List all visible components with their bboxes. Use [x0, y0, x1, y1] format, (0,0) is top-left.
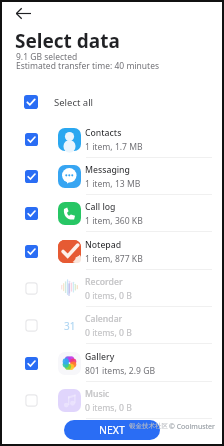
button[interactable]: Music: [0, 382, 224, 419]
staticText: Call log: [85, 201, 116, 213]
staticText: 31: [64, 319, 76, 333]
staticText: 0 items, 0 B: [85, 327, 132, 339]
staticText: 0 items, 0 B: [85, 402, 132, 414]
staticText: Notepad: [85, 239, 122, 251]
staticText: NEXT: [99, 423, 125, 437]
staticText: 801 items, 2.9 GB: [85, 365, 156, 377]
staticText: Contacts: [85, 127, 122, 139]
button[interactable]: NEXT: [64, 420, 160, 440]
staticText: 银金技术社区: [129, 422, 168, 430]
staticText: Select all: [54, 96, 94, 109]
staticText: Recorder: [85, 276, 123, 288]
staticText: 0 items, 0 B: [85, 290, 132, 302]
staticText: Estimated transfer time: 40 minutes: [16, 60, 160, 72]
button[interactable]: Contacts: [0, 121, 224, 158]
staticText: 1 item, 1.7 MB: [85, 141, 143, 153]
button[interactable]: Select all: [0, 91, 224, 113]
staticText: Calendar: [85, 313, 123, 325]
button[interactable]: Messaging: [0, 158, 224, 195]
staticText: 9.1 GB selected: [16, 51, 78, 63]
staticText: Select data: [15, 28, 120, 54]
button[interactable]: Call log: [0, 195, 224, 232]
staticText: 1 item, 877 KB: [85, 253, 143, 265]
staticText: Music: [85, 388, 110, 400]
button[interactable]: Recorder: [0, 270, 224, 307]
button[interactable]: Gallery: [0, 345, 224, 382]
staticText: Gallery: [85, 351, 115, 363]
staticText: Messaging: [85, 164, 130, 176]
staticText: 1 item, 360 KB: [85, 215, 143, 227]
button[interactable]: Notepad: [0, 233, 224, 270]
staticText: 1 item, 13 MB: [85, 178, 141, 190]
staticText: © Coolmuster: [169, 422, 215, 432]
button[interactable]: Back: [10, 0, 36, 26]
button[interactable]: 31: [0, 307, 224, 344]
